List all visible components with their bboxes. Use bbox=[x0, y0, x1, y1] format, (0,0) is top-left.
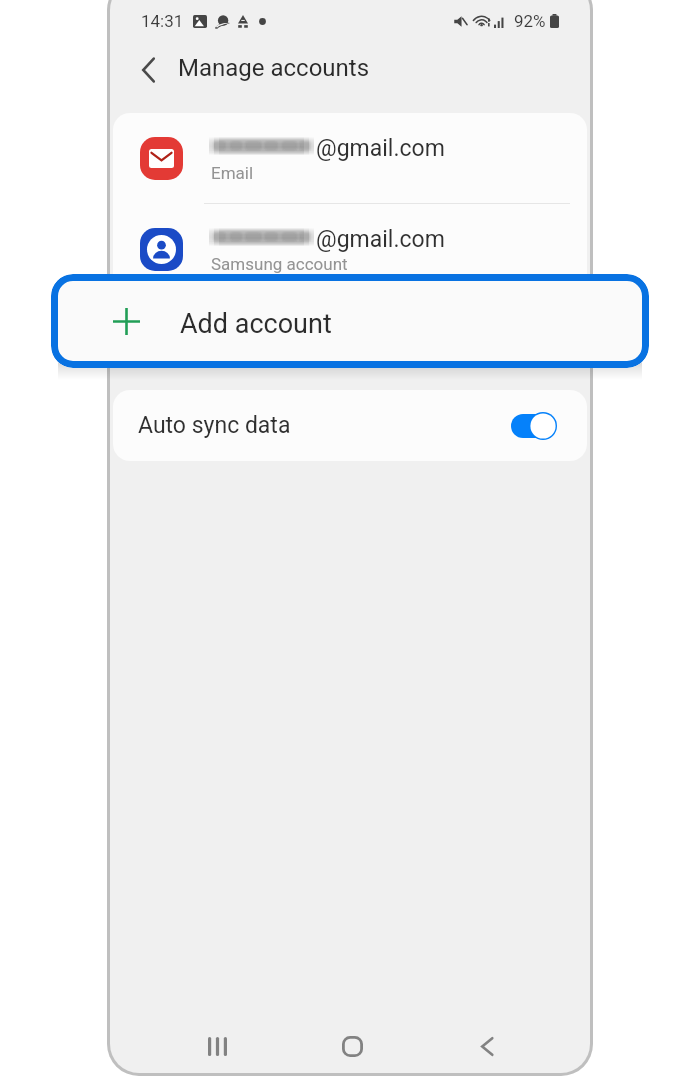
staticText: Email bbox=[211, 163, 254, 183]
button[interactable]: @gmail.com bbox=[113, 204, 587, 294]
staticText: @gmail.com bbox=[316, 226, 445, 253]
button[interactable]: Add account bbox=[51, 274, 649, 368]
staticText: 92% bbox=[514, 11, 546, 31]
staticText: Manage accounts bbox=[178, 54, 370, 82]
staticText: Samsung account bbox=[211, 254, 348, 274]
staticText: Add account bbox=[180, 308, 332, 340]
staticText: 14:31 bbox=[141, 11, 184, 31]
button[interactable]: Navigate up bbox=[128, 50, 168, 90]
button[interactable]: Recent apps bbox=[184, 1018, 250, 1074]
staticText: Auto sync data bbox=[138, 412, 291, 439]
button[interactable]: @gmail.com bbox=[113, 113, 587, 203]
staticText: @gmail.com bbox=[316, 135, 445, 162]
button[interactable]: Auto sync data bbox=[113, 390, 587, 461]
button[interactable]: Home bbox=[319, 1018, 385, 1074]
button[interactable]: Back bbox=[454, 1018, 520, 1074]
